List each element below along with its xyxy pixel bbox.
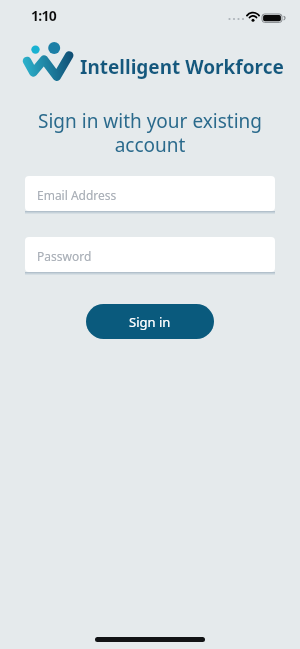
button[interactable]: Email Address — [25, 176, 275, 211]
staticText: 1:10 — [31, 6, 57, 25]
staticText: Email Address — [37, 187, 117, 203]
button[interactable]: Password — [25, 237, 275, 272]
button[interactable]: Sign in — [86, 304, 214, 339]
staticText: Sign in with your existing account — [0, 108, 300, 157]
staticText: Sign in — [129, 313, 171, 331]
staticText: Intelligent Workforce — [80, 54, 284, 80]
staticText: Password — [37, 248, 92, 264]
